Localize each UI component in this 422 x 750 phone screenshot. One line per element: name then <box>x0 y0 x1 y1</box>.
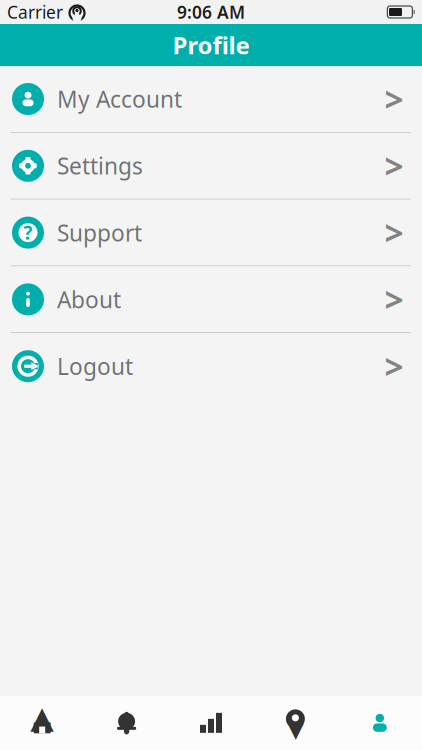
staticText: > <box>384 277 403 322</box>
button[interactable]: ? <box>0 200 422 266</box>
staticText: ▼ <box>287 718 303 742</box>
button[interactable]: > <box>0 333 422 399</box>
staticText: Profile <box>172 29 249 61</box>
button[interactable]: Settings <box>0 133 422 199</box>
staticText: Settings <box>57 151 143 181</box>
staticText: My Account <box>57 84 182 114</box>
staticText: > <box>384 210 403 255</box>
staticText: > <box>384 344 403 388</box>
staticText: Carrier <box>7 0 63 23</box>
staticText: 9:06 AM <box>177 0 245 23</box>
staticText: ▲ <box>30 700 54 735</box>
button[interactable]: My Account <box>0 66 422 132</box>
staticText: ? <box>23 220 32 245</box>
button[interactable]: Map <box>253 695 338 750</box>
staticText: About <box>57 284 121 314</box>
button[interactable]: About <box>0 266 422 332</box>
staticText: > <box>384 77 403 121</box>
staticText: Support <box>57 217 142 248</box>
staticText: Logout <box>57 351 133 381</box>
staticText: > <box>384 144 403 188</box>
staticText: > <box>30 357 38 375</box>
button[interactable]: Home <box>0 695 84 750</box>
button[interactable]: Notifications <box>84 695 169 750</box>
button[interactable]: Statistics <box>169 695 253 750</box>
button[interactable]: Profile <box>338 695 422 750</box>
